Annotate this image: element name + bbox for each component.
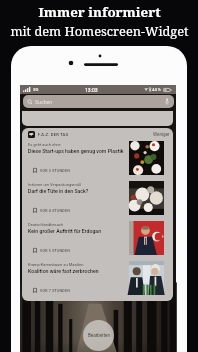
staticText: Es geht auch ohne <box>28 142 61 147</box>
staticText: 44 % <box>152 87 161 92</box>
staticText: Immer informiert <box>38 3 161 21</box>
staticText: VOR 7 STUNDEN <box>40 289 70 293</box>
staticText: Bearbeiten <box>88 333 110 338</box>
button[interactable]: Es geht auch ohne <box>22 140 173 180</box>
staticText: Kramp-Karrenbauer zu Maaßen <box>28 262 84 267</box>
staticText: VOR 3 STUNDEN <box>40 169 70 173</box>
staticText: Kein großer Auftritt für Erdogan <box>28 228 102 234</box>
staticText: 13:03 <box>85 87 98 93</box>
staticText: 3G <box>33 87 39 92</box>
button[interactable]: F.A.Z. DER TAG <box>28 128 170 140</box>
button[interactable]: Kramp-Karrenbauer zu Maaßen <box>22 260 173 300</box>
button[interactable]: Irrtümer um Verpackungsmüll <box>22 180 173 220</box>
button[interactable]: Deutschlandbesuch <box>22 220 173 260</box>
staticText: Darf die Tüte in den Sack? <box>28 188 89 194</box>
staticText: VOR 4 STUNDEN <box>40 209 70 213</box>
staticText: Weniger <box>153 132 170 137</box>
staticText: VOR 5 STUNDEN <box>40 249 70 253</box>
staticText: mit dem Homescreen-Widget <box>10 22 189 39</box>
staticText: F.A.Z. DER TAG <box>38 132 69 137</box>
staticText: Suchen <box>35 99 53 105</box>
staticText: Diese Start-ups haben genug vom Plastik <box>28 148 124 154</box>
button[interactable]: Suchen <box>23 95 174 108</box>
button[interactable]: Bearbeiten <box>83 320 114 351</box>
staticText: Irrtümer um Verpackungsmüll <box>28 182 81 187</box>
staticText: Deutschlandbesuch <box>28 222 64 227</box>
staticText: Koalition wäre fast zerbrochen <box>28 268 99 274</box>
